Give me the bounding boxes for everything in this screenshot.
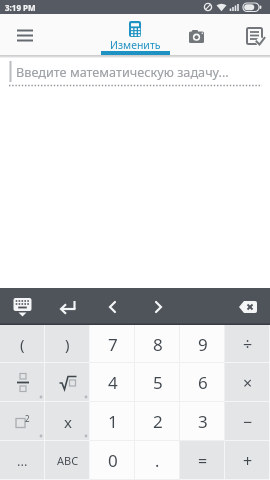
- button[interactable]: 4: [90, 363, 135, 402]
- button[interactable]: [90, 288, 135, 325]
- button[interactable]: 1: [90, 402, 135, 441]
- button[interactable]: [225, 288, 270, 325]
- staticText: .: [155, 450, 160, 472]
- button[interactable]: [45, 288, 90, 325]
- staticText: 3:19 PM: [5, 2, 36, 13]
- button[interactable]: −: [225, 402, 270, 441]
- button[interactable]: [135, 288, 180, 325]
- staticText: Изменить: [110, 38, 161, 52]
- button[interactable]: .: [135, 441, 180, 480]
- staticText: (: [20, 334, 25, 354]
- staticText: ABC: [57, 453, 79, 468]
- button[interactable]: 2: [135, 402, 180, 441]
- button[interactable]: 8: [135, 325, 180, 363]
- staticText: 0: [108, 449, 118, 472]
- button[interactable]: ...: [0, 441, 45, 480]
- button[interactable]: =: [180, 441, 225, 480]
- staticText: 8: [153, 333, 163, 356]
- staticText: Введите математическую задачу...: [16, 63, 229, 80]
- button[interactable]: 6: [180, 363, 225, 402]
- button[interactable]: [0, 288, 45, 325]
- button[interactable]: x: [45, 402, 90, 441]
- staticText: ): [65, 334, 70, 354]
- button[interactable]: ABC: [45, 441, 90, 480]
- staticText: ×: [243, 372, 253, 394]
- staticText: ÷: [243, 333, 253, 355]
- button[interactable]: [45, 363, 90, 402]
- button[interactable]: 3: [180, 402, 225, 441]
- button[interactable]: 9: [180, 325, 225, 363]
- button[interactable]: [183, 22, 210, 49]
- button[interactable]: ÷: [225, 325, 270, 363]
- staticText: 7: [108, 333, 118, 356]
- button[interactable]: [0, 363, 45, 402]
- button[interactable]: 0: [90, 441, 135, 480]
- button[interactable]: ×: [225, 363, 270, 402]
- staticText: −: [243, 411, 253, 433]
- staticText: 6: [198, 371, 208, 394]
- staticText: =: [198, 450, 208, 472]
- button[interactable]: +: [225, 441, 270, 480]
- staticText: 3: [198, 410, 208, 433]
- button[interactable]: Изменить: [100, 14, 170, 56]
- staticText: 2: [153, 410, 163, 433]
- staticText: 9: [198, 333, 208, 356]
- staticText: 2: [25, 413, 30, 424]
- button[interactable]: (: [0, 325, 45, 363]
- button[interactable]: 2: [0, 402, 45, 441]
- staticText: ...: [17, 452, 28, 470]
- button[interactable]: 5: [135, 363, 180, 402]
- staticText: x: [64, 412, 72, 432]
- staticText: 5: [153, 371, 163, 394]
- button[interactable]: [11, 23, 39, 51]
- button[interactable]: 7: [90, 325, 135, 363]
- button[interactable]: ): [45, 325, 90, 363]
- staticText: 4: [108, 371, 118, 394]
- button[interactable]: [240, 21, 268, 49]
- staticText: 1: [108, 410, 118, 433]
- staticText: +: [243, 450, 253, 472]
